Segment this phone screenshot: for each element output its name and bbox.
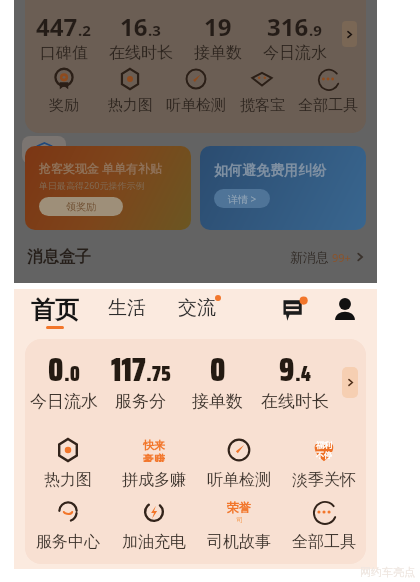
- staticText: 交流: [178, 296, 216, 320]
- button[interactable]: 447: [25, 0, 366, 133]
- staticText: 荣誉: [227, 500, 251, 515]
- button[interactable]: Safety: [22, 136, 66, 164]
- staticText: 网约车亮点: [360, 565, 415, 579]
- staticText: .4: [295, 357, 311, 390]
- staticText: 司: [236, 515, 243, 524]
- staticText: 淡季关怀: [292, 470, 356, 490]
- staticText: 全部工具: [298, 96, 358, 115]
- staticText: 如何避免费用纠纷: [214, 162, 326, 180]
- button[interactable]: 19: [179, 16, 256, 66]
- staticText: 117: [111, 345, 146, 395]
- staticText: 服务分: [115, 391, 166, 412]
- staticText: 首页: [31, 295, 79, 325]
- button[interactable]: 117: [102, 358, 179, 428]
- staticText: 单日最高得260元操作示例: [39, 179, 145, 191]
- staticText: 听单检测: [166, 96, 226, 115]
- staticText: 9: [279, 345, 295, 395]
- button[interactable]: 服务中心: [25, 500, 111, 552]
- button[interactable]: 福利: [281, 438, 366, 490]
- staticText: 今日流水: [30, 391, 98, 412]
- button[interactable]: 全部工具: [295, 68, 361, 115]
- button[interactable]: 9: [256, 358, 333, 428]
- staticText: .0: [64, 357, 80, 390]
- button[interactable]: 如何避免费用纠纷: [200, 146, 366, 230]
- staticText: 加油充电: [122, 532, 186, 552]
- staticText: 领奖励: [66, 200, 96, 213]
- staticText: 口碑值: [40, 43, 88, 63]
- staticText: .2: [78, 20, 91, 40]
- button[interactable]: 16: [102, 16, 179, 66]
- staticText: 生活: [108, 296, 146, 320]
- button[interactable]: 447: [25, 16, 102, 66]
- button[interactable]: 热力图: [97, 68, 163, 115]
- button[interactable]: 热力图: [25, 438, 111, 490]
- staticText: 热力图: [108, 96, 153, 115]
- staticText: 19: [204, 10, 232, 43]
- button[interactable]: 交流: [178, 296, 216, 320]
- button[interactable]: More stats: [342, 367, 358, 398]
- staticText: 消息盒子: [27, 247, 91, 267]
- staticText: 快来: [143, 438, 165, 452]
- staticText: 接单数: [192, 391, 243, 412]
- button[interactable]: 听单检测: [163, 68, 229, 115]
- staticText: 全部工具: [292, 532, 356, 552]
- staticText: 拼成多赚: [122, 470, 186, 490]
- staticText: 新消息: [290, 249, 329, 265]
- button[interactable]: 荣誉: [196, 500, 281, 552]
- staticText: 详情 >: [228, 192, 257, 206]
- staticText: 在线时长: [261, 391, 329, 412]
- staticText: .3: [148, 20, 161, 40]
- button[interactable]: 奖励: [30, 68, 97, 115]
- staticText: 在线时长: [109, 43, 173, 63]
- button[interactable]: 0: [179, 358, 256, 428]
- staticText: 447: [36, 10, 78, 43]
- button[interactable]: 0: [25, 358, 102, 428]
- button[interactable]: 全部工具: [281, 500, 366, 552]
- button[interactable]: More stats: [342, 21, 357, 47]
- button[interactable]: 消息盒子: [27, 240, 364, 274]
- staticText: 揽客宝: [240, 96, 285, 115]
- staticText: 豪赚: [143, 452, 165, 462]
- staticText: 0: [48, 345, 64, 395]
- staticText: 听单检测: [207, 470, 271, 490]
- button[interactable]: Messages: [279, 293, 311, 325]
- button[interactable]: 抢客奖现金 单单有补贴: [25, 146, 191, 230]
- staticText: 0: [210, 345, 226, 395]
- button[interactable]: 316: [256, 16, 333, 66]
- button[interactable]: Profile: [329, 293, 361, 325]
- staticText: 热力图: [44, 470, 92, 490]
- button[interactable]: 揽客宝: [229, 68, 295, 115]
- staticText: 司机故事: [207, 532, 271, 552]
- staticText: 福利: [316, 440, 332, 450]
- staticText: 接单数: [194, 43, 242, 63]
- staticText: 奖励: [49, 96, 79, 115]
- staticText: .9: [309, 20, 322, 40]
- staticText: 抢客奖现金 单单有补贴: [39, 160, 163, 176]
- staticText: .75: [146, 357, 171, 390]
- staticText: 99+: [332, 250, 351, 265]
- staticText: 服务中心: [36, 532, 100, 552]
- button[interactable]: 首页: [31, 295, 79, 329]
- button[interactable]: 快来: [111, 438, 196, 490]
- button[interactable]: 生活: [108, 296, 146, 320]
- staticText: 316: [267, 10, 309, 43]
- staticText: 今日流水: [263, 43, 327, 63]
- button[interactable]: 加油充电: [111, 500, 196, 552]
- staticText: 16: [120, 10, 148, 43]
- button[interactable]: 听单检测: [196, 438, 281, 490]
- staticText: 不停: [316, 450, 332, 460]
